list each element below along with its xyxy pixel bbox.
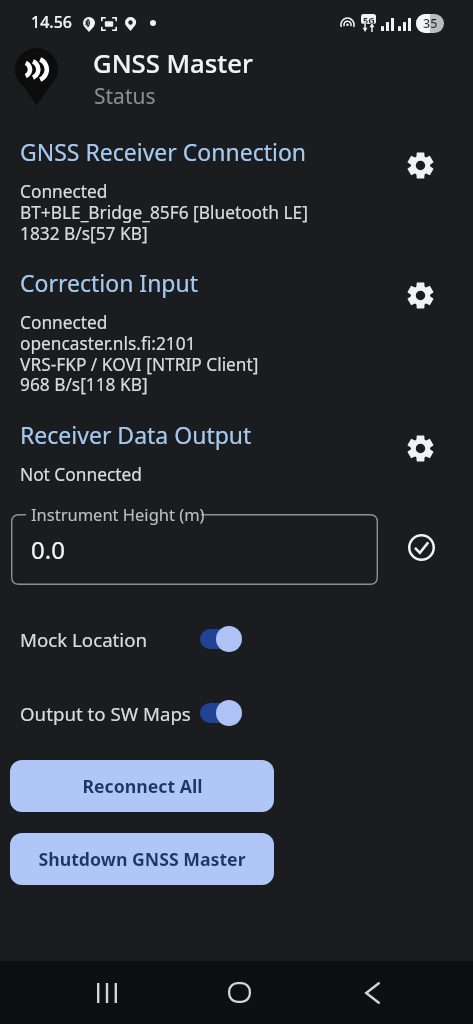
staticText: Mock Location: [20, 627, 148, 652]
button[interactable]: Reconnect All: [10, 760, 274, 812]
button[interactable]: Shutdown GNSS Master: [10, 833, 274, 885]
staticText: 35: [423, 15, 438, 32]
button[interactable]: Back: [342, 961, 402, 1024]
staticText: 14.56: [31, 11, 72, 33]
button[interactable]: Output to SW Maps: [0, 689, 473, 737]
staticText: 5G: [363, 14, 375, 24]
button[interactable]: Mock Location: [0, 615, 473, 663]
button[interactable]: Settings: [400, 428, 440, 468]
button[interactable]: Settings: [400, 145, 440, 185]
staticText: Shutdown GNSS Master: [38, 847, 246, 871]
staticText: Reconnect All: [82, 774, 203, 798]
button[interactable]: Home: [209, 961, 269, 1024]
staticText: 1832 B/s[57 KB]: [20, 222, 148, 246]
staticText: VRS-FKP / KOVI [NTRIP Client]: [20, 353, 259, 377]
staticText: Not Connected: [20, 463, 142, 487]
staticText: Instrument Height (m): [31, 503, 205, 525]
staticText: Output to SW Maps: [20, 701, 191, 726]
staticText: 0.0: [31, 533, 65, 566]
staticText: opencaster.nls.fi:2101: [20, 332, 196, 356]
staticText: Receiver Data Output: [20, 419, 252, 450]
staticText: Connected: [20, 311, 108, 335]
button[interactable]: Apply instrument height: [403, 529, 439, 565]
button[interactable]: [11, 514, 378, 585]
staticText: Status: [94, 82, 156, 111]
staticText: Correction Input: [20, 267, 199, 298]
button[interactable]: Settings: [400, 275, 440, 315]
staticText: GNSS Master: [93, 46, 253, 81]
staticText: Connected: [20, 180, 108, 204]
staticText: 968 B/s[118 KB]: [20, 373, 148, 397]
staticText: GNSS Receiver Connection: [20, 136, 307, 167]
button[interactable]: Recent apps: [77, 961, 137, 1024]
staticText: BT+BLE_Bridge_85F6 [Bluetooth LE]: [20, 201, 308, 225]
